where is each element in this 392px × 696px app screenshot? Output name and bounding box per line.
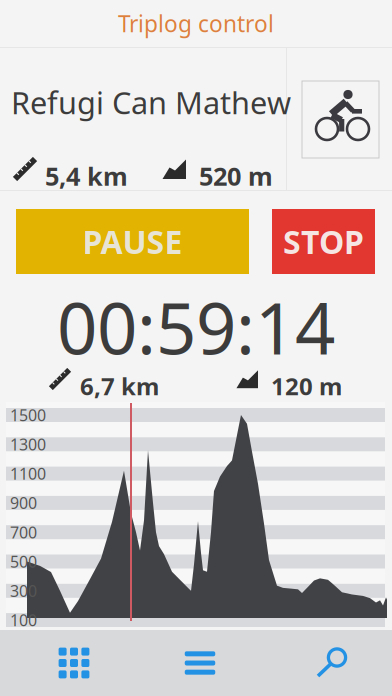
staticText: STOP [283, 220, 364, 263]
staticText: Refugi Can Mathew [11, 82, 291, 123]
staticText: 5,4 km [45, 159, 128, 193]
staticText: 120 m [271, 370, 342, 402]
button[interactable]: Dashboard [5, 630, 143, 696]
staticText: 300 [10, 580, 37, 601]
staticText: PAUSE [82, 220, 182, 263]
staticText: 500 [10, 551, 37, 572]
staticText: 100 [10, 609, 37, 631]
staticText: 700 [10, 522, 37, 543]
button[interactable]: PAUSE [16, 209, 249, 274]
button[interactable]: Search [266, 630, 392, 696]
staticText: 1500 [10, 404, 46, 426]
staticText: Triplog control [118, 8, 274, 38]
staticText: 00:59:14 [57, 280, 335, 374]
staticText: 1300 [10, 434, 46, 455]
staticText: 520 m [199, 159, 273, 193]
staticText: 6,7 km [80, 370, 159, 402]
button[interactable]: STOP [272, 209, 375, 274]
staticText: 900 [10, 492, 37, 513]
button[interactable]: Routes [140, 630, 260, 696]
staticText: 1100 [10, 463, 46, 484]
